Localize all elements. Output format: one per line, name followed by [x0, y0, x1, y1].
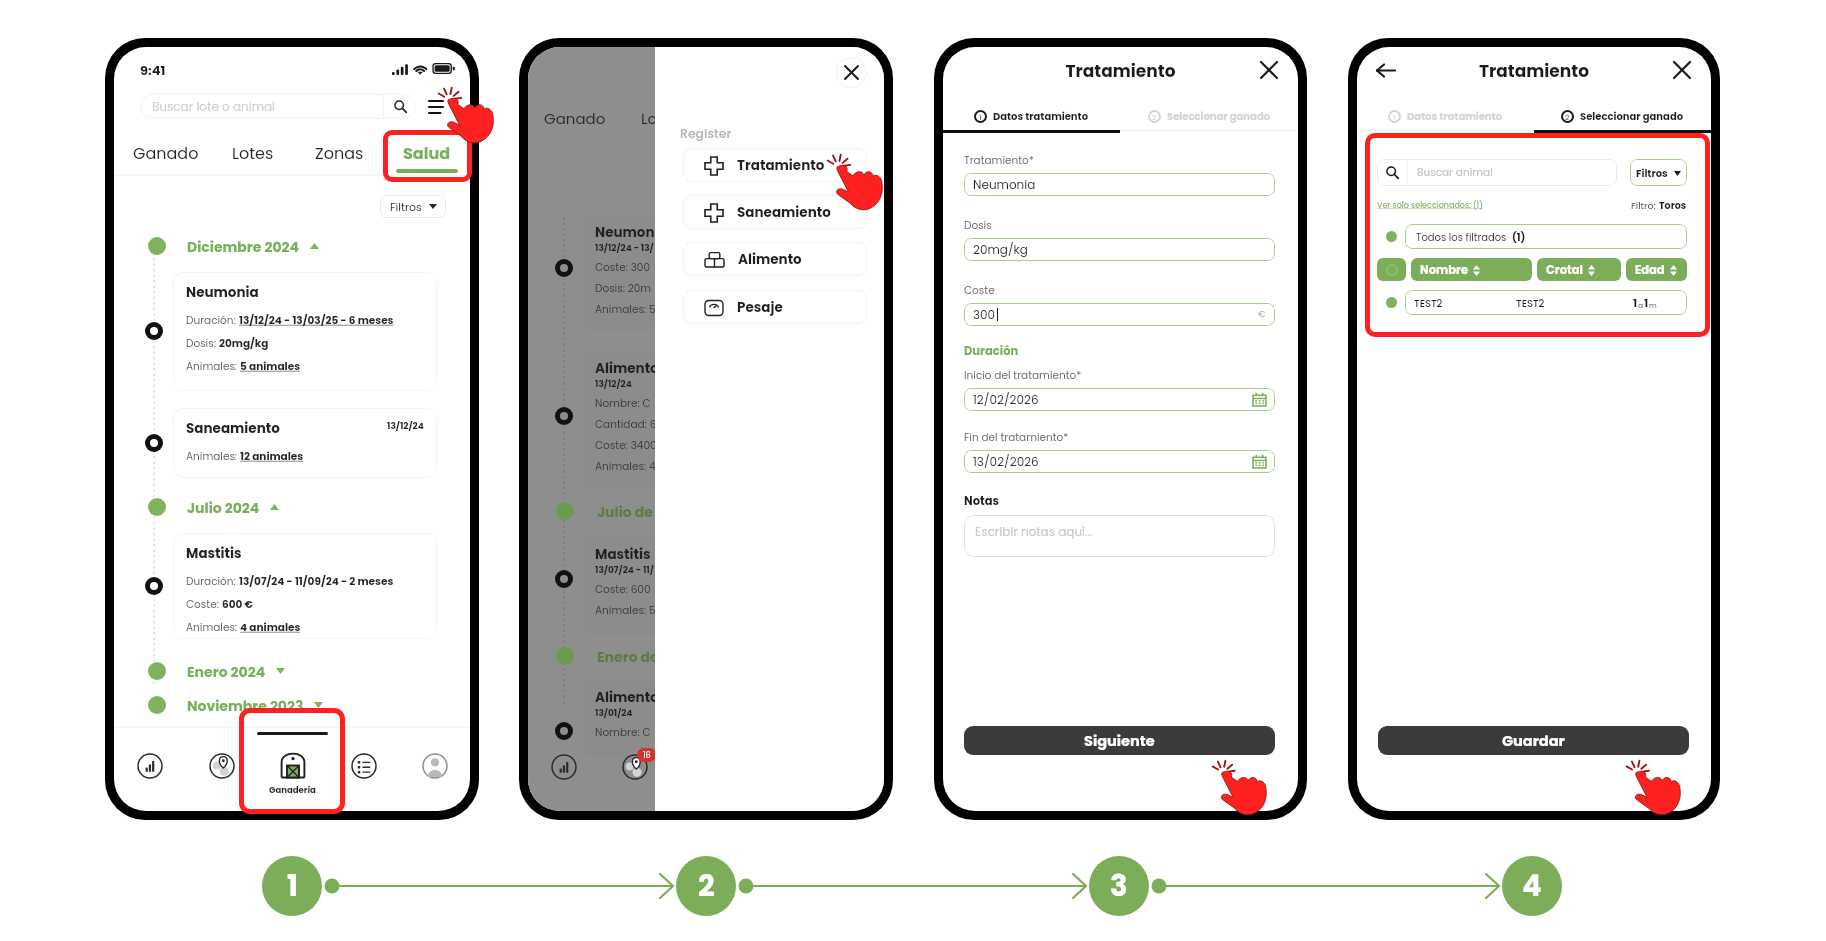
button[interactable]: TEST2 [1405, 290, 1687, 315]
button[interactable]: Edad [1626, 258, 1687, 281]
staticText: 13/07/24 - 11/ [595, 564, 654, 577]
button[interactable]: Enero 2024 [187, 662, 285, 680]
staticText: Animales: [186, 620, 240, 635]
staticText: Duración: [186, 574, 239, 589]
button[interactable]: 2 [1534, 103, 1711, 129]
staticText: Coste [964, 283, 995, 298]
button[interactable]: Siguiente [964, 726, 1275, 755]
button[interactable]: Saneamiento [173, 408, 437, 478]
staticText: Tratamiento [1357, 59, 1711, 83]
button[interactable]: Ganado [122, 139, 209, 167]
button[interactable]: 3 [1089, 856, 1149, 916]
staticText: 20mg/kg [219, 336, 269, 351]
button[interactable]: Perfil [399, 728, 470, 811]
button[interactable]: Noviembre 2023 [187, 696, 323, 714]
staticText: Animales: [186, 449, 240, 464]
staticText: Duración: [186, 313, 239, 328]
staticText: Lo [641, 108, 658, 129]
staticText: Animales: 4 [595, 459, 656, 474]
staticText: (1) [1512, 230, 1526, 244]
button[interactable]: 12/02/2026 [964, 388, 1275, 411]
button[interactable]: Ganadería [257, 728, 328, 811]
staticText: Zonas [315, 142, 364, 164]
button[interactable]: Filtros [1630, 159, 1687, 186]
staticText: TEST2 [1414, 296, 1516, 310]
button[interactable]: 13/02/2026 [964, 450, 1275, 473]
button[interactable]: Atrás [1372, 57, 1398, 83]
staticText: 2 [1565, 112, 1570, 122]
staticText: Pesaje [737, 298, 783, 317]
button[interactable]: Buscar lote o animal [140, 94, 416, 119]
button[interactable]: Tratamiento [683, 148, 867, 182]
button[interactable]: Alimento [683, 242, 867, 276]
button[interactable]: Pesaje [683, 290, 867, 324]
button[interactable]: Buscar [1377, 159, 1617, 186]
button[interactable]: Julio 2024 [187, 498, 279, 516]
button[interactable]: Salud [383, 139, 470, 167]
button[interactable]: 2 [676, 856, 736, 916]
button[interactable]: Ver solo seleccionados: (1) [1377, 200, 1483, 211]
staticText: Neumonia [973, 176, 1036, 193]
button[interactable]: Todos los filtrados [1405, 224, 1687, 249]
staticText: Duración [964, 343, 1019, 359]
button[interactable]: Mastitis [173, 533, 437, 639]
button[interactable]: Escribir notas aquí... [964, 515, 1275, 557]
staticText: Saneamiento [186, 419, 280, 438]
staticText: Datos tratamiento [993, 109, 1089, 123]
button[interactable]: Lotes [209, 139, 296, 167]
button[interactable]: Buscar [384, 94, 416, 119]
button[interactable]: Neumonia [964, 173, 1275, 196]
button[interactable]: Cerrar [1669, 57, 1695, 83]
staticText: Filtros [390, 199, 422, 214]
button[interactable]: 1 [262, 856, 322, 916]
button[interactable]: Zonas [296, 139, 383, 167]
button[interactable]: Neumonia [173, 272, 437, 391]
staticText: Coste: 300 [595, 260, 651, 275]
staticText: Filtro: [1631, 199, 1659, 212]
button[interactable]: 20mg/kg [964, 238, 1275, 261]
button[interactable]: 2 [1120, 103, 1298, 129]
staticText: Alimento [595, 359, 659, 378]
staticText: 1 [979, 112, 982, 122]
button[interactable]: 1 [943, 103, 1120, 129]
staticText: Enero 2024 [187, 662, 266, 680]
staticText: 12 animales [240, 449, 304, 464]
button[interactable]: Seleccionar todos [1377, 258, 1406, 281]
staticText: Diciembre 2024 [187, 237, 300, 255]
staticText: Neumoni [595, 223, 659, 242]
staticText: Nombre [1420, 262, 1468, 278]
staticText: Escribir notas aquí... [975, 523, 1093, 540]
staticText: 3 [1110, 866, 1128, 907]
button[interactable]: Cerrar [1256, 57, 1282, 83]
staticText: Cantidad: 6 [595, 417, 657, 432]
button[interactable]: Crotal [1537, 258, 1621, 281]
button[interactable]: Filtros [380, 195, 446, 218]
button[interactable]: Saneamiento [683, 195, 867, 229]
staticText: Nombre: C [595, 725, 651, 740]
staticText: Ganado [133, 142, 199, 164]
staticText: 1 [1633, 295, 1638, 310]
staticText: 13/01/24 [595, 707, 633, 720]
button[interactable]: Guardar [1378, 726, 1689, 755]
button[interactable]: Menu [427, 99, 445, 115]
staticText: Ganadería [269, 784, 316, 796]
staticText: Buscar lote o animal [152, 98, 383, 115]
button[interactable]: Lista [328, 728, 399, 811]
button[interactable]: 4 [1502, 856, 1562, 916]
staticText: 1 [1393, 112, 1396, 122]
button[interactable]: Cerrar [836, 57, 867, 88]
button[interactable]: Diciembre 2024 [187, 237, 319, 255]
staticText: Julio de 20 [597, 502, 673, 520]
staticText: 2 [1152, 112, 1157, 122]
staticText: Animales: [186, 359, 240, 374]
staticText: Saneamiento [737, 203, 831, 222]
staticText: 13/12/24 - 13/03/25 - 6 meses [239, 313, 394, 328]
button[interactable]: Estadisticas [114, 728, 186, 811]
staticText: Neumonia [186, 283, 259, 302]
button[interactable]: Nombre [1411, 258, 1532, 281]
staticText: Siguiente [1084, 731, 1155, 751]
staticText: Seleccionar ganado [1580, 109, 1684, 123]
button[interactable]: Mapa [186, 728, 257, 811]
button[interactable]: 300 [964, 303, 1275, 326]
button[interactable]: 1 [1357, 103, 1534, 129]
